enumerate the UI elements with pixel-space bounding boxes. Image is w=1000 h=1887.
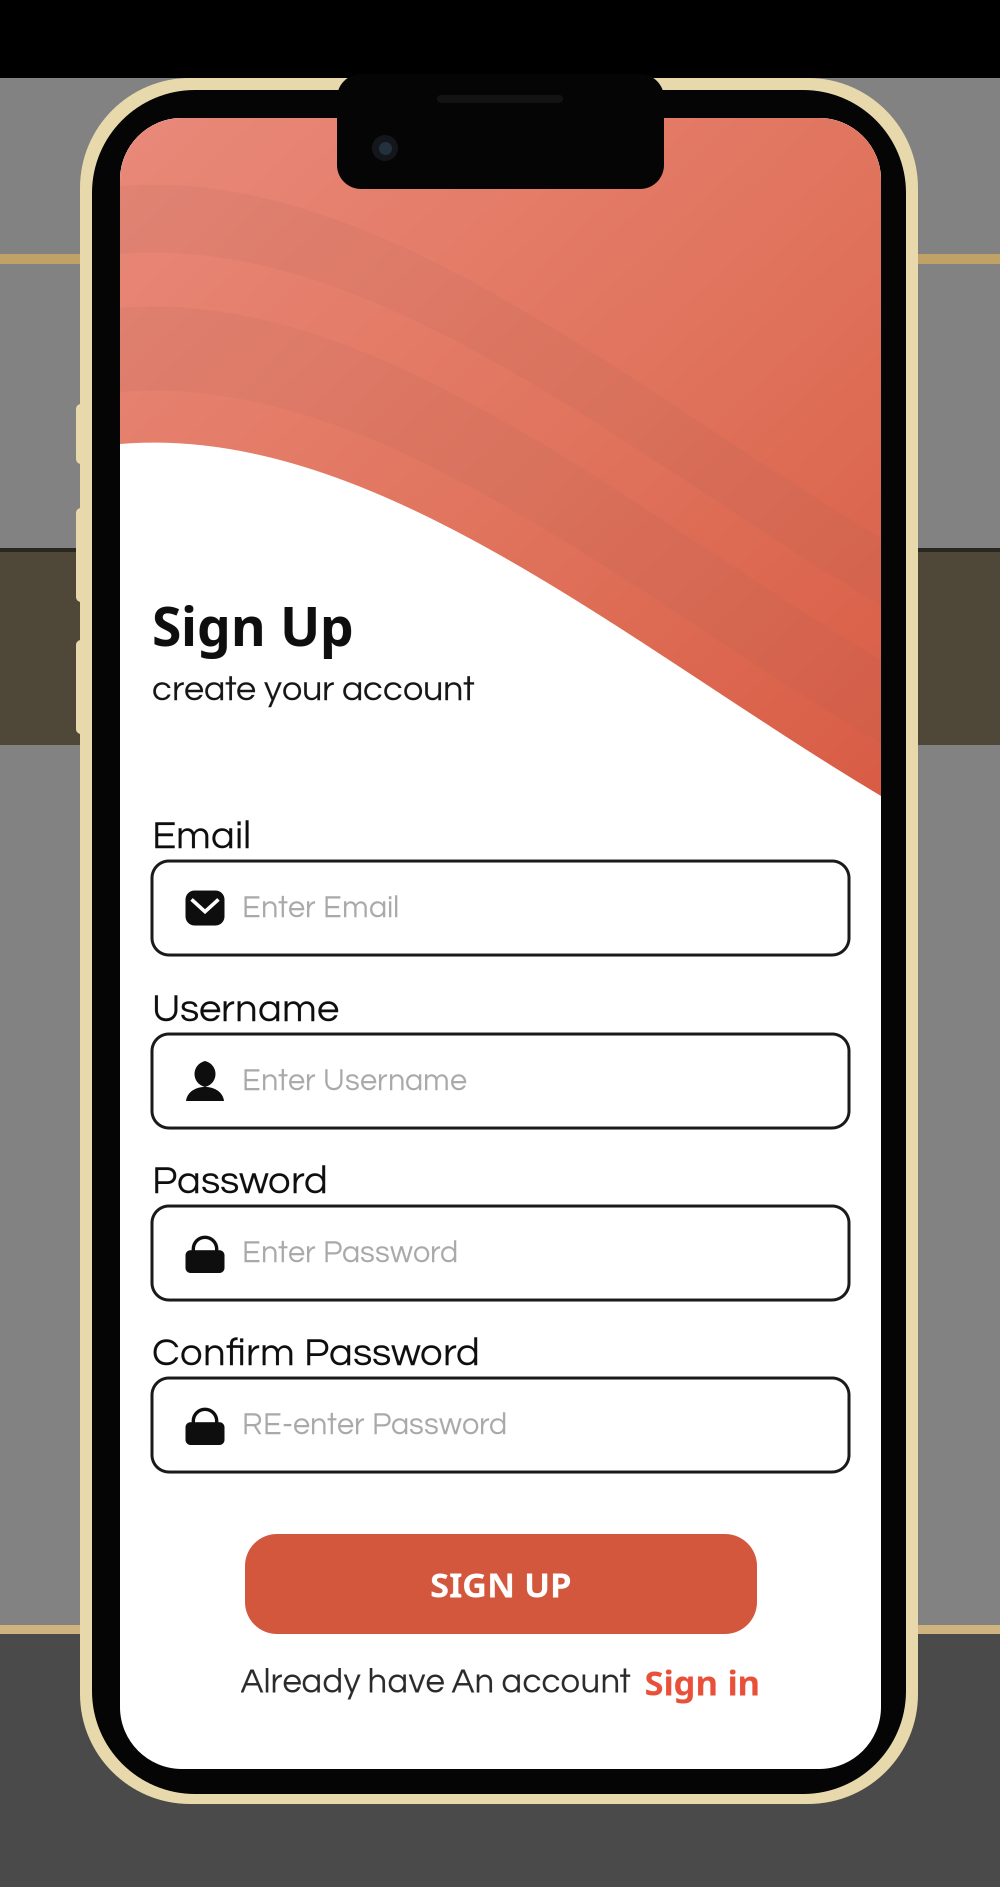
staticText: Already have An account xyxy=(240,1664,630,1700)
staticText: Username xyxy=(152,988,339,1030)
button[interactable]: Email xyxy=(152,812,849,955)
button[interactable]: Confirm Password xyxy=(152,1329,849,1472)
button[interactable]: Username xyxy=(152,985,849,1128)
staticText: Password xyxy=(152,1160,328,1202)
staticText: Enter Username xyxy=(242,1065,467,1097)
staticText: Confirm Password xyxy=(152,1332,480,1374)
staticText: Sign in xyxy=(644,1659,760,1705)
staticText: Email xyxy=(152,815,251,857)
button[interactable]: Password xyxy=(152,1157,849,1300)
button[interactable]: Already have An account xyxy=(120,1646,881,1718)
staticText: Enter Email xyxy=(242,892,399,924)
staticText: SIGN UP xyxy=(430,1561,572,1607)
staticText: Enter Password xyxy=(242,1237,458,1269)
staticText: Sign Up xyxy=(152,590,354,661)
staticText: RE-enter Password xyxy=(242,1409,507,1441)
staticText: create your account xyxy=(152,671,475,708)
button[interactable]: SIGN UP xyxy=(245,1534,757,1634)
